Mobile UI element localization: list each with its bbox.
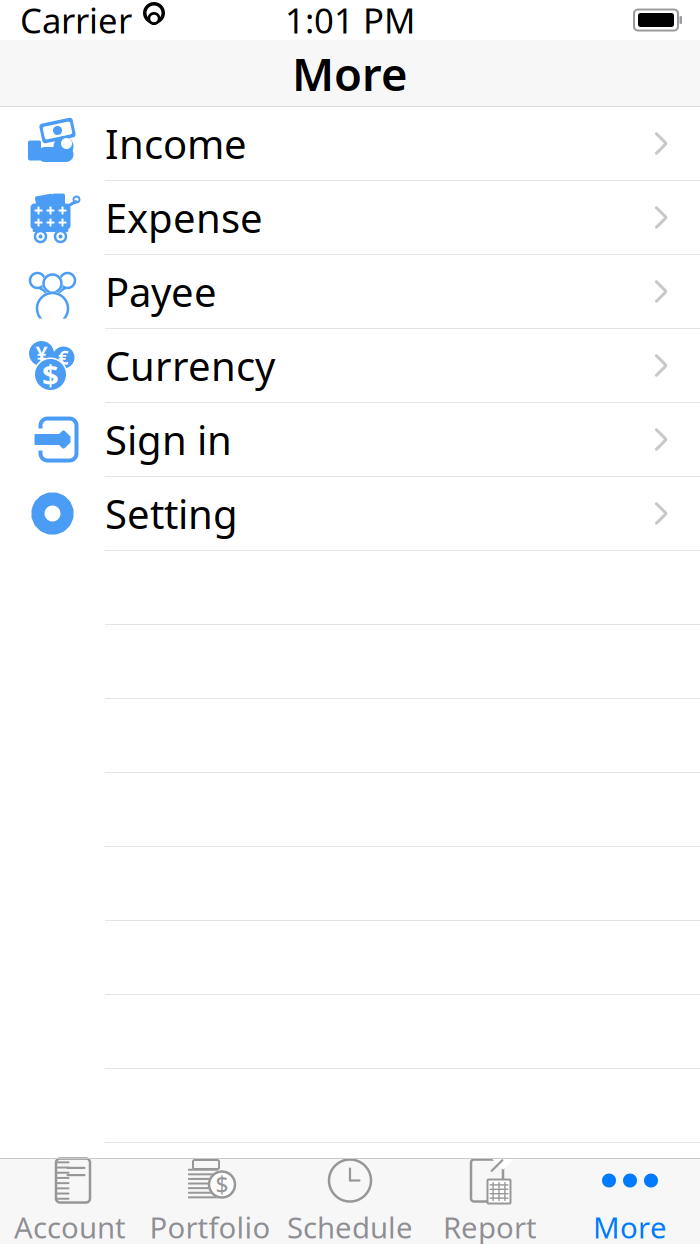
button[interactable]: Report [420, 1158, 560, 1244]
button[interactable]: $ [140, 1158, 280, 1244]
staticText: More [292, 43, 408, 104]
button[interactable]: Account [0, 1158, 140, 1244]
staticText: Expense [105, 191, 263, 244]
staticText: Setting [105, 487, 238, 540]
staticText: Carrier [20, 0, 132, 43]
button[interactable]: Expense [0, 181, 700, 255]
staticText: Portfolio [149, 1207, 270, 1244]
staticText: Sign in [105, 413, 232, 466]
button[interactable]: Sign in [0, 403, 700, 477]
staticText: $ [42, 355, 59, 394]
button[interactable]: Payee [0, 255, 700, 329]
staticText: Currency [105, 339, 275, 392]
staticText: Schedule [287, 1207, 413, 1244]
button[interactable]: Income [0, 107, 700, 181]
staticText: Report [443, 1207, 537, 1244]
staticText: Income [105, 117, 247, 170]
staticText: Payee [105, 265, 217, 318]
button[interactable]: ¥ [0, 329, 700, 403]
button[interactable]: Schedule [280, 1158, 420, 1244]
staticText: Account [14, 1207, 126, 1244]
staticText: ¥ [35, 339, 47, 368]
staticText: 1:01 PM [285, 0, 415, 43]
button[interactable]: Setting [0, 477, 700, 551]
staticText: $ [215, 1169, 228, 1200]
staticText: More [593, 1207, 667, 1244]
button[interactable]: More [560, 1158, 700, 1244]
staticText: € [58, 345, 69, 370]
